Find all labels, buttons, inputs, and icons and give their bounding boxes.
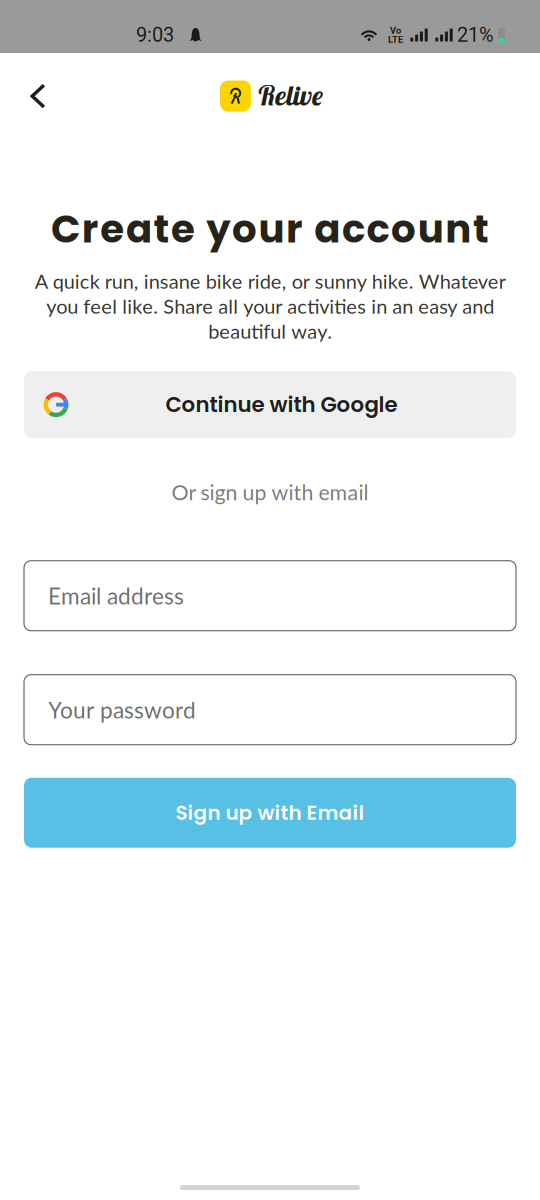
staticText: A quick run, insane bike ride, or sunny … bbox=[34, 269, 505, 343]
button[interactable]: Back bbox=[10, 68, 66, 124]
staticText: LTE bbox=[388, 34, 403, 45]
button[interactable]: Your password bbox=[24, 675, 516, 745]
staticText: Your password bbox=[48, 696, 196, 723]
staticText: Vo bbox=[390, 25, 401, 36]
staticText: Relive bbox=[257, 77, 323, 112]
staticText: Email address bbox=[48, 582, 184, 609]
staticText: Create your account bbox=[51, 202, 489, 256]
button[interactable]: Sign up with Email bbox=[24, 778, 516, 848]
button[interactable]: Continue with Google bbox=[24, 371, 516, 438]
staticText: Sign up with Email bbox=[175, 799, 364, 827]
button[interactable]: Email address bbox=[24, 561, 516, 631]
staticText: Continue with Google bbox=[165, 390, 397, 420]
staticText: Or sign up with email bbox=[171, 479, 368, 505]
staticText: 21% bbox=[457, 23, 494, 47]
staticText: 9:03 bbox=[136, 23, 174, 47]
